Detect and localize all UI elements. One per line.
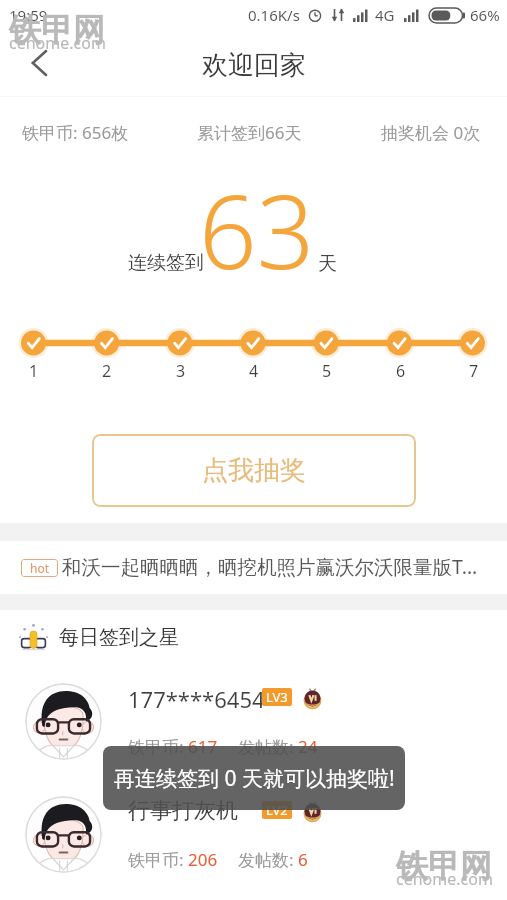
staticText: 铁甲币:: [128, 735, 188, 758]
staticText: 177****6454: [128, 684, 265, 714]
staticText: 2: [102, 360, 112, 382]
staticText: 行事打灰机: [128, 797, 238, 825]
staticText: 19:59: [9, 5, 48, 25]
staticText: 欢迎回家: [202, 49, 306, 82]
staticText: 63: [199, 161, 315, 299]
staticText: 4: [249, 360, 259, 382]
staticText: 6: [396, 360, 406, 382]
staticText: 再连续签到 0 天就可以抽奖啦!: [114, 764, 395, 793]
staticText: hot: [30, 560, 50, 576]
staticText: 连续签到: [128, 251, 204, 275]
staticText: 4G: [375, 5, 395, 25]
staticText: 24: [298, 735, 318, 758]
staticText: 617: [188, 735, 218, 758]
staticText: 铁甲网: [9, 10, 105, 50]
staticText: 和沃一起晒晒晒，晒挖机照片赢沃尔沃限量版T...: [62, 553, 478, 580]
staticText: 1: [29, 360, 39, 382]
staticText: 5: [322, 360, 332, 382]
staticText: 天: [318, 252, 337, 276]
staticText: 铁甲网: [396, 846, 492, 886]
staticText: 66%: [470, 5, 500, 25]
button[interactable]: Back: [20, 42, 62, 84]
staticText: 发帖数:: [238, 735, 298, 758]
button[interactable]: 177****6454: [0, 665, 507, 778]
staticText: 206: [188, 848, 218, 871]
staticText: 铁甲币:: [128, 848, 188, 871]
staticText: LV2: [266, 801, 288, 819]
staticText: 点我抽奖: [202, 454, 306, 487]
button[interactable]: 行事打灰机: [0, 778, 507, 891]
staticText: 累计签到66天: [197, 121, 302, 144]
button[interactable]: hot: [0, 541, 507, 594]
staticText: 发帖数:: [238, 848, 298, 871]
staticText: 0.16K/s: [248, 5, 300, 25]
staticText: cehome.com: [396, 868, 493, 890]
staticText: 每日签到之星: [59, 625, 179, 650]
staticText: 3: [176, 360, 186, 382]
staticText: 7: [469, 360, 479, 382]
button[interactable]: 点我抽奖: [92, 434, 416, 507]
staticText: LV3: [266, 688, 288, 706]
staticText: cehome.com: [9, 32, 106, 54]
staticText: 抽奖机会 0次: [381, 121, 481, 144]
staticText: 6: [298, 848, 308, 871]
staticText: 铁甲币: 656枚: [22, 121, 129, 144]
